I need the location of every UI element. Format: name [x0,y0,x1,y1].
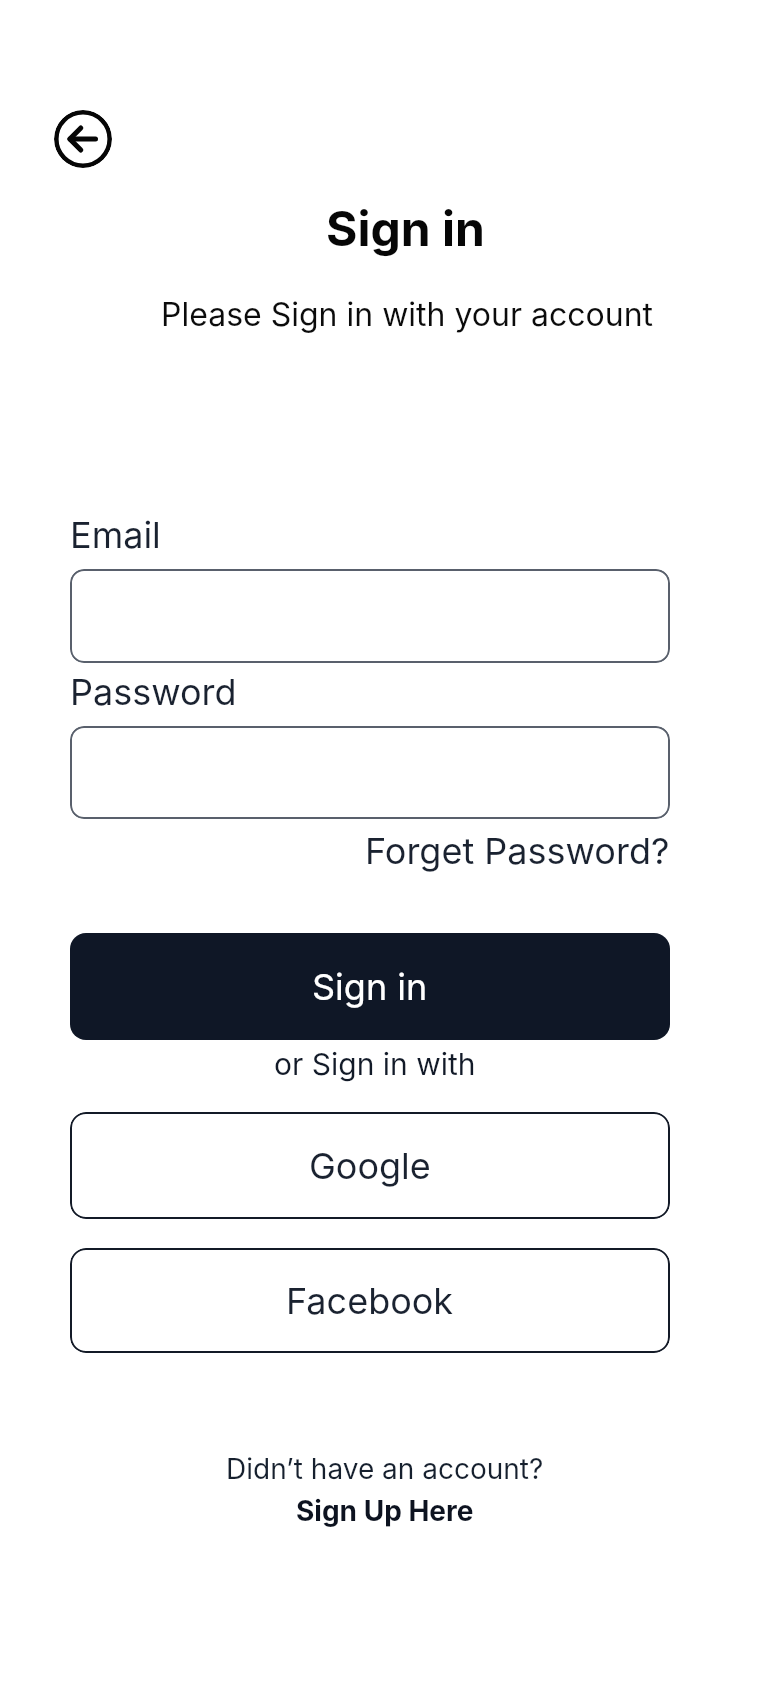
button[interactable] [70,569,670,663]
button[interactable]: Facebook [70,1248,670,1353]
staticText: Sign in [326,199,485,257]
staticText: Didn’t have an account? [226,1452,544,1486]
button[interactable]: Google [70,1112,670,1219]
staticText: or Sign in with [274,1046,476,1082]
button[interactable] [54,110,112,168]
staticText: Password [70,670,237,714]
button[interactable]: Sign in [70,933,670,1040]
staticText: Google [309,1144,431,1188]
staticText: Please Sign in with your account [161,295,653,334]
staticText: Facebook [286,1279,454,1323]
staticText: Sign in [312,965,428,1009]
staticText: Email [70,513,161,557]
button[interactable] [70,726,670,819]
button[interactable]: Sign Up Here [296,1494,474,1528]
button[interactable]: Forget Password? [365,829,670,873]
